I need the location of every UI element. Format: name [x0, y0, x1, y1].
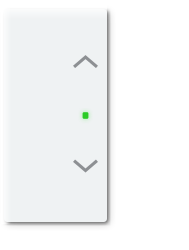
button[interactable]: Lower	[74, 101, 114, 149]
button[interactable]: Raise	[74, 101, 114, 149]
